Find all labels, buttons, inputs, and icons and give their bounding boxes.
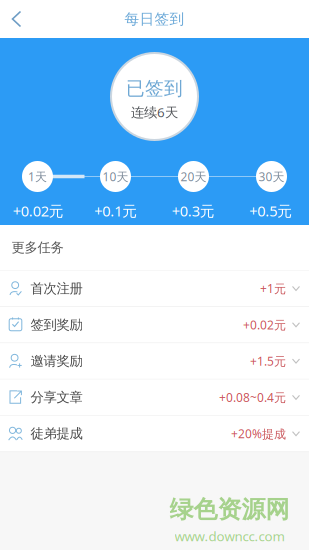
button[interactable]: 徒弟提成: [0, 416, 309, 451]
button[interactable]: 分享文章: [0, 379, 309, 415]
staticText: 连续6天: [131, 103, 178, 121]
button[interactable]: 签到奖励: [0, 307, 309, 343]
staticText: +1元: [260, 280, 286, 296]
button[interactable]: 首次注册: [0, 271, 309, 306]
staticText: 每日签到: [124, 10, 184, 28]
staticText: 1天: [28, 168, 47, 184]
button[interactable]: Back: [0, 0, 35, 38]
staticText: +0.5元: [249, 201, 292, 220]
staticText: +0.02元: [243, 317, 286, 333]
button[interactable]: 邀请奖励: [0, 343, 309, 379]
staticText: +0.08~0.4元: [219, 389, 286, 405]
staticText: 签到奖励: [30, 317, 82, 333]
staticText: 邀请奖励: [30, 353, 82, 369]
staticText: 徒弟提成: [30, 425, 82, 442]
staticText: 30天: [258, 168, 284, 184]
staticText: +1.5元: [250, 353, 286, 369]
staticText: 绿色资源网: [169, 495, 289, 524]
staticText: 分享文章: [30, 389, 82, 406]
staticText: +0.3元: [172, 201, 215, 220]
staticText: 20天: [180, 168, 206, 184]
staticText: +0.1元: [94, 201, 137, 220]
staticText: 更多任务: [11, 239, 63, 256]
staticText: 10天: [102, 168, 128, 184]
staticText: www.downcc.com: [174, 527, 284, 545]
staticText: +0.02元: [13, 201, 64, 220]
staticText: +20%提成: [231, 426, 286, 442]
staticText: 已签到: [126, 77, 183, 100]
staticText: 首次注册: [30, 280, 82, 297]
